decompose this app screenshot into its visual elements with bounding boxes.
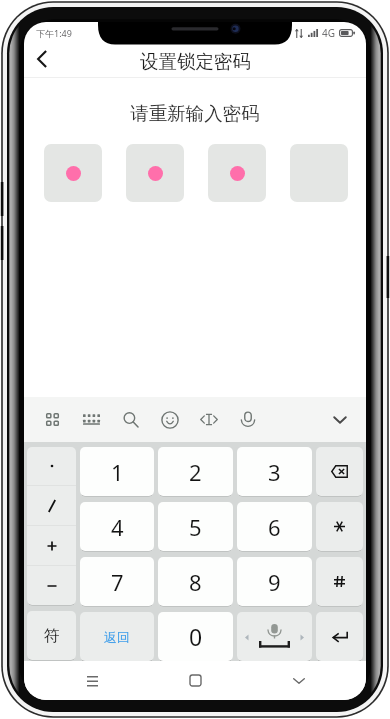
- button[interactable]: Keyboard layouts: [33, 397, 72, 442]
- staticText: 6: [268, 512, 281, 542]
- button[interactable]: Asterisk: [316, 502, 363, 551]
- button[interactable]: 返回: [80, 612, 154, 661]
- button[interactable]: Password box: [44, 144, 102, 202]
- button[interactable]: Move cursor: [189, 397, 228, 442]
- button[interactable]: 6: [237, 502, 312, 551]
- staticText: 设置锁定密码: [140, 50, 251, 73]
- button[interactable]: Back: [263, 661, 335, 700]
- button[interactable]: Password box: [208, 144, 266, 202]
- button[interactable]: Space: [237, 612, 312, 661]
- staticText: 4: [111, 512, 124, 542]
- button[interactable]: Dot: [27, 447, 76, 485]
- button[interactable]: 2: [158, 447, 233, 496]
- button[interactable]: 0: [158, 612, 233, 661]
- button[interactable]: Slash: [27, 486, 76, 525]
- staticText: 请重新输入密码: [24, 102, 366, 125]
- staticText: 符: [44, 626, 60, 646]
- staticText: 2: [189, 457, 202, 487]
- button[interactable]: Backspace: [316, 447, 363, 496]
- button[interactable]: Enter: [316, 612, 363, 661]
- button[interactable]: Hash: [316, 557, 363, 606]
- button[interactable]: 3: [237, 447, 312, 496]
- button[interactable]: Home: [159, 661, 231, 700]
- button[interactable]: 符: [27, 611, 76, 660]
- button[interactable]: Switch keyboard: [72, 397, 111, 442]
- button[interactable]: Recent apps: [56, 661, 128, 700]
- button[interactable]: Password box: [126, 144, 184, 202]
- button[interactable]: 9: [237, 557, 312, 606]
- button[interactable]: Hide keyboard: [314, 397, 366, 442]
- staticText: 7: [111, 567, 124, 597]
- staticText: 0: [189, 621, 203, 652]
- staticText: 返回: [104, 629, 130, 645]
- button[interactable]: 4: [80, 502, 154, 551]
- button[interactable]: Minus: [27, 566, 76, 605]
- button[interactable]: 7: [80, 557, 154, 606]
- staticText: 8: [189, 567, 202, 597]
- staticText: 1: [111, 457, 124, 487]
- staticText: 下午1:49: [36, 27, 72, 39]
- staticText: 3: [268, 457, 281, 487]
- button[interactable]: 1: [80, 447, 154, 496]
- button[interactable]: Plus: [27, 526, 76, 565]
- button[interactable]: 5: [158, 502, 233, 551]
- staticText: 5: [189, 512, 202, 542]
- button[interactable]: Voice input: [228, 397, 267, 442]
- button[interactable]: Back: [24, 44, 59, 77]
- button[interactable]: 8: [158, 557, 233, 606]
- staticText: 9: [268, 567, 281, 597]
- button[interactable]: Emoji: [150, 397, 189, 442]
- button[interactable]: Search: [111, 397, 150, 442]
- staticText: 4G: [322, 26, 335, 40]
